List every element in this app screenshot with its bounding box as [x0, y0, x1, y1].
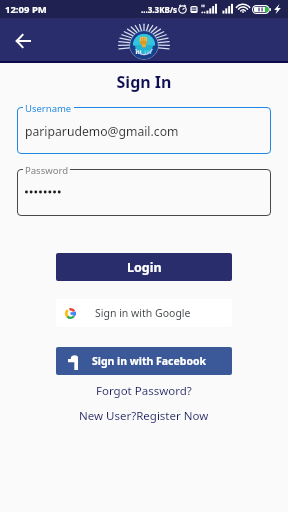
- button[interactable]: Login: [56, 253, 232, 281]
- staticText: pariparudemo@gmail.com: [25, 123, 179, 140]
- staticText: Sign In: [0, 71, 288, 93]
- button[interactable]: Sign in with Facebook: [56, 347, 232, 375]
- button[interactable]: Forgot Password?: [0, 383, 288, 399]
- button[interactable]: Username: [17, 102, 271, 154]
- button[interactable]: Back: [8, 26, 37, 55]
- staticText: Forgot Password?: [96, 383, 192, 399]
- staticText: Username: [25, 102, 72, 115]
- button[interactable]: Sign in with Google: [56, 299, 232, 327]
- button[interactable]: New User?Register Now: [0, 408, 288, 424]
- button[interactable]: Password: [17, 164, 271, 216]
- staticText: Password: [25, 164, 68, 177]
- staticText: Login: [127, 259, 162, 276]
- staticText: 12:09 PM: [5, 3, 47, 16]
- staticText: Sign in with Facebook: [92, 354, 207, 368]
- staticText: Sign in with Google: [95, 306, 191, 320]
- staticText: New User?Register Now: [79, 408, 209, 424]
- staticText: ...3.3KB/s: [141, 4, 178, 15]
